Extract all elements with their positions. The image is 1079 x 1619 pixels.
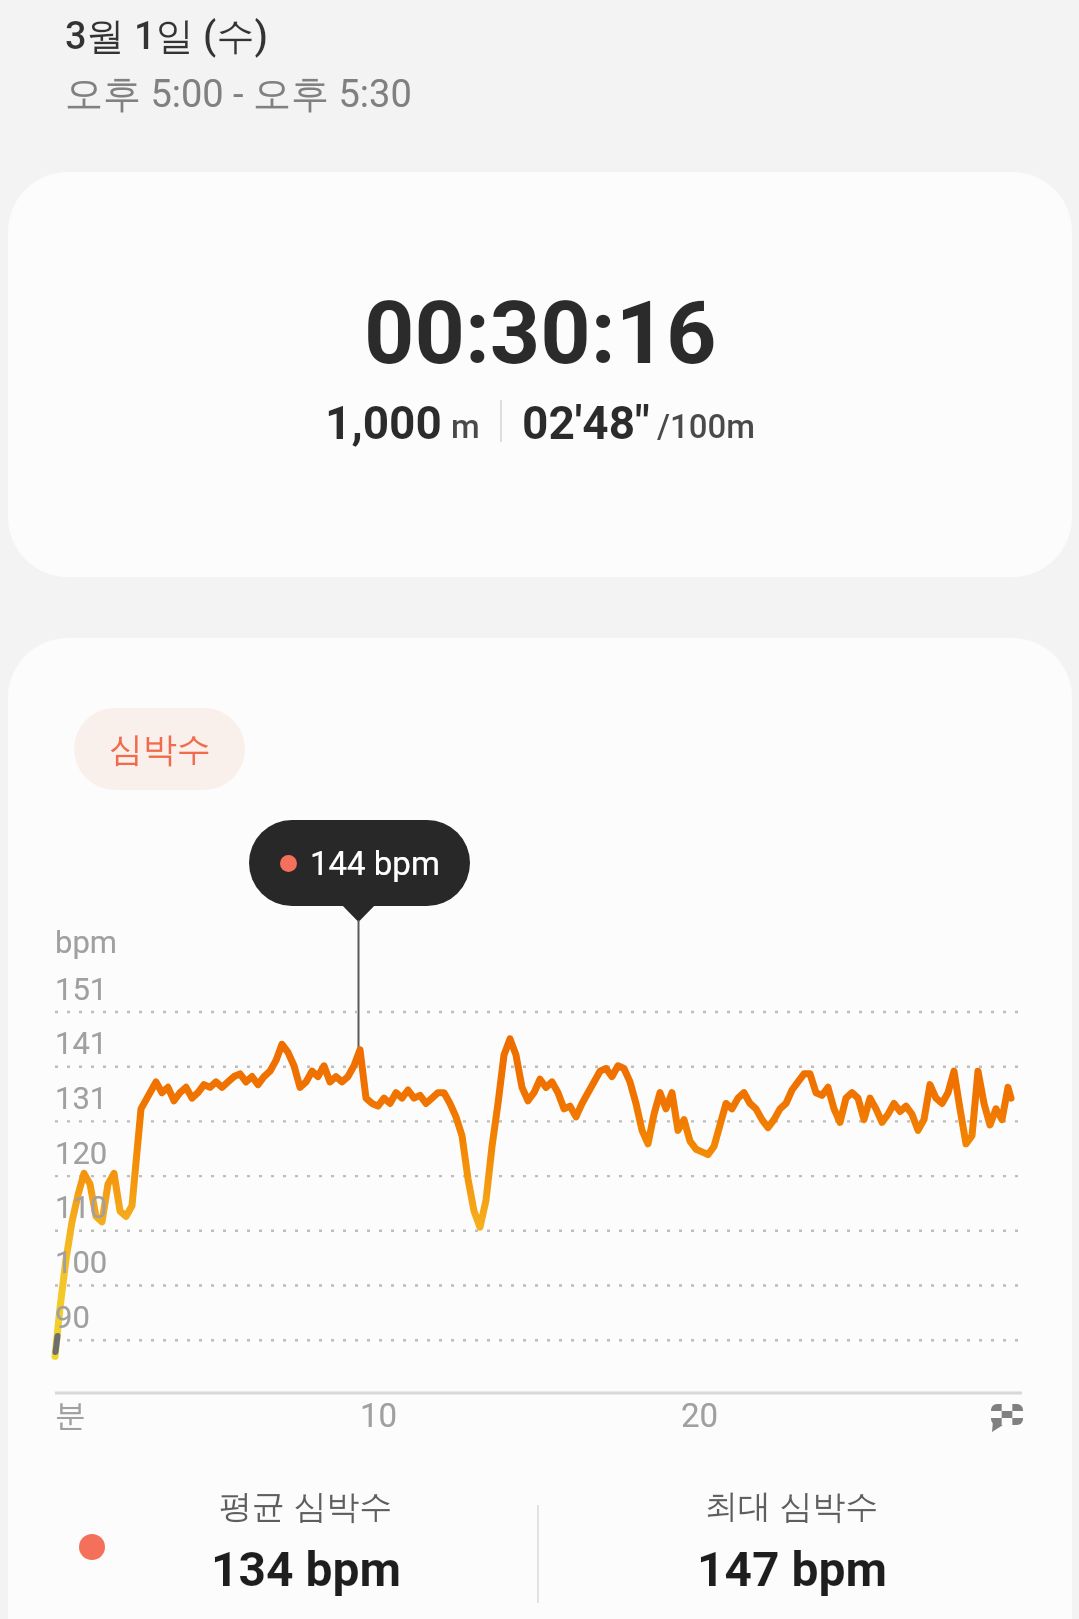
staticText: 147 bpm (697, 1541, 888, 1597)
button[interactable]: 심박수 (74, 708, 245, 790)
button[interactable]: 평균 심박수 (126, 1483, 486, 1597)
button[interactable]: 00:30:16 (8, 172, 1072, 577)
staticText: 20 (681, 1396, 719, 1435)
staticText: 120 (55, 1135, 108, 1171)
staticText: 오후 5:00 - 오후 5:30 (65, 70, 412, 118)
staticText: m (451, 407, 480, 446)
staticText: 평균 심박수 (219, 1483, 393, 1528)
staticText: bpm (55, 924, 117, 960)
staticText: 심박수 (109, 728, 211, 771)
staticText: 3월 1일 (수) (65, 12, 268, 60)
staticText: 131 (55, 1080, 108, 1116)
staticText: 00:30:16 (364, 281, 717, 384)
staticText: 100 (55, 1244, 108, 1280)
staticText: 02'48" (522, 396, 650, 450)
staticText: 90 (55, 1299, 90, 1335)
staticText: 최대 심박수 (705, 1483, 879, 1528)
staticText: /100m (657, 407, 756, 446)
staticText: 10 (360, 1396, 398, 1435)
staticText: 110 (55, 1189, 108, 1225)
staticText: 141 (55, 1025, 108, 1061)
staticText: 151 (55, 971, 108, 1007)
staticText: 분 (55, 1396, 86, 1435)
staticText: 1,000 (325, 396, 442, 450)
button[interactable]: 최대 심박수 (612, 1483, 972, 1597)
staticText: 144 bpm (310, 844, 440, 883)
staticText: 134 bpm (211, 1541, 402, 1597)
